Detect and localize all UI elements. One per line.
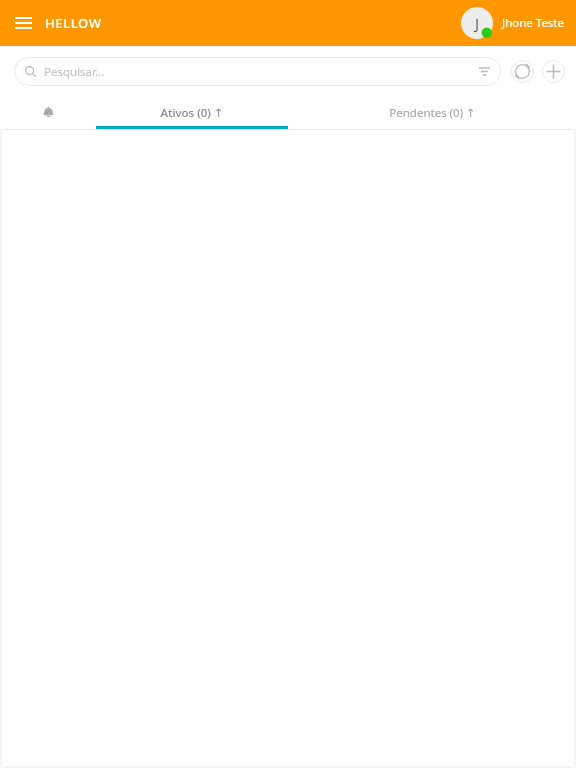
staticText: HELLOW bbox=[45, 14, 102, 32]
staticText: J bbox=[475, 13, 480, 33]
button[interactable]: Ativos (0) ↑ bbox=[96, 96, 288, 129]
staticText: Jhone Teste bbox=[502, 15, 565, 31]
staticText: Ativos (0) ↑ bbox=[160, 105, 224, 121]
button[interactable]: Pesquisar... bbox=[14, 57, 501, 86]
staticText: Pesquisar... bbox=[44, 64, 105, 80]
button[interactable]: J bbox=[461, 7, 565, 39]
button[interactable]: Filter bbox=[475, 63, 493, 81]
button[interactable]: Open navigation menu bbox=[9, 9, 37, 37]
button[interactable]: Notifications bbox=[0, 96, 96, 129]
button[interactable]: Add bbox=[542, 60, 565, 83]
button[interactable]: Pendentes (0) ↑ bbox=[288, 96, 576, 129]
button[interactable]: Refresh bbox=[511, 60, 534, 83]
staticText: Pendentes (0) ↑ bbox=[389, 105, 476, 121]
